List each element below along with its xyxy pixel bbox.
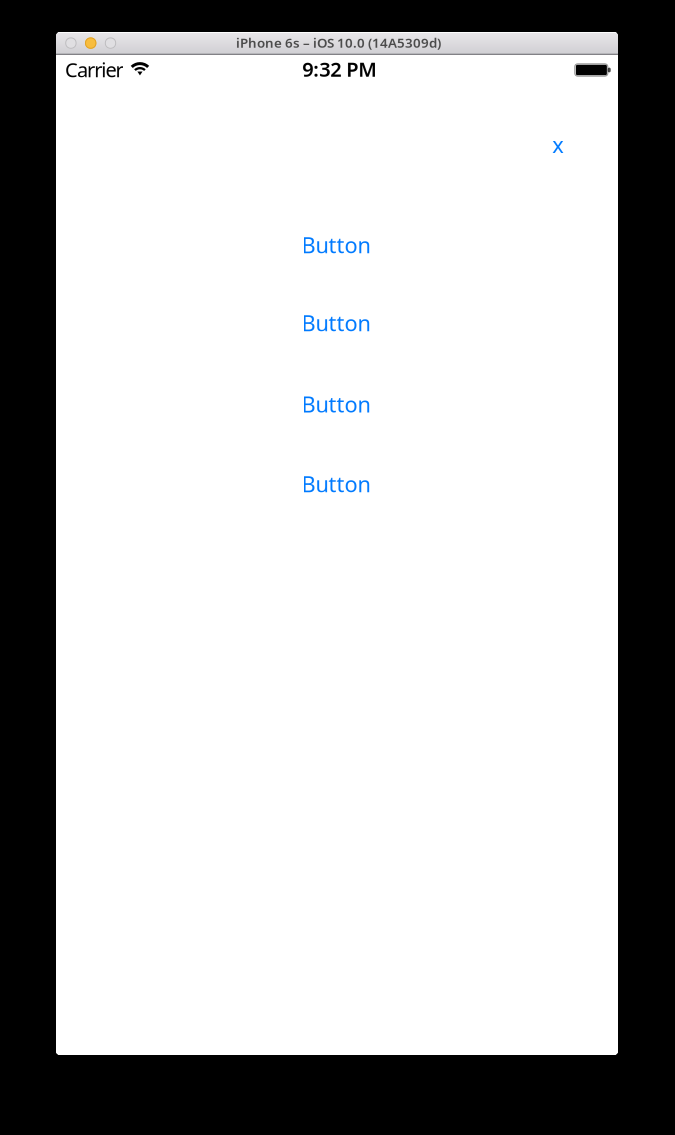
button[interactable]: Button [276,301,396,345]
staticText: iPhone 6s – iOS 10.0 (14A5309d) [236,33,441,52]
staticText: Button [301,230,370,260]
staticText: x [552,130,563,159]
staticText: Button [301,469,370,498]
staticText: Carrier [65,56,123,83]
staticText: 9:32 PM [302,55,377,83]
staticText: Button [301,389,370,419]
button[interactable]: Close [536,130,580,160]
button[interactable]: Button [276,223,396,267]
staticText: Button [301,308,370,337]
button[interactable]: Button [276,382,396,426]
button[interactable]: Button [276,462,396,506]
